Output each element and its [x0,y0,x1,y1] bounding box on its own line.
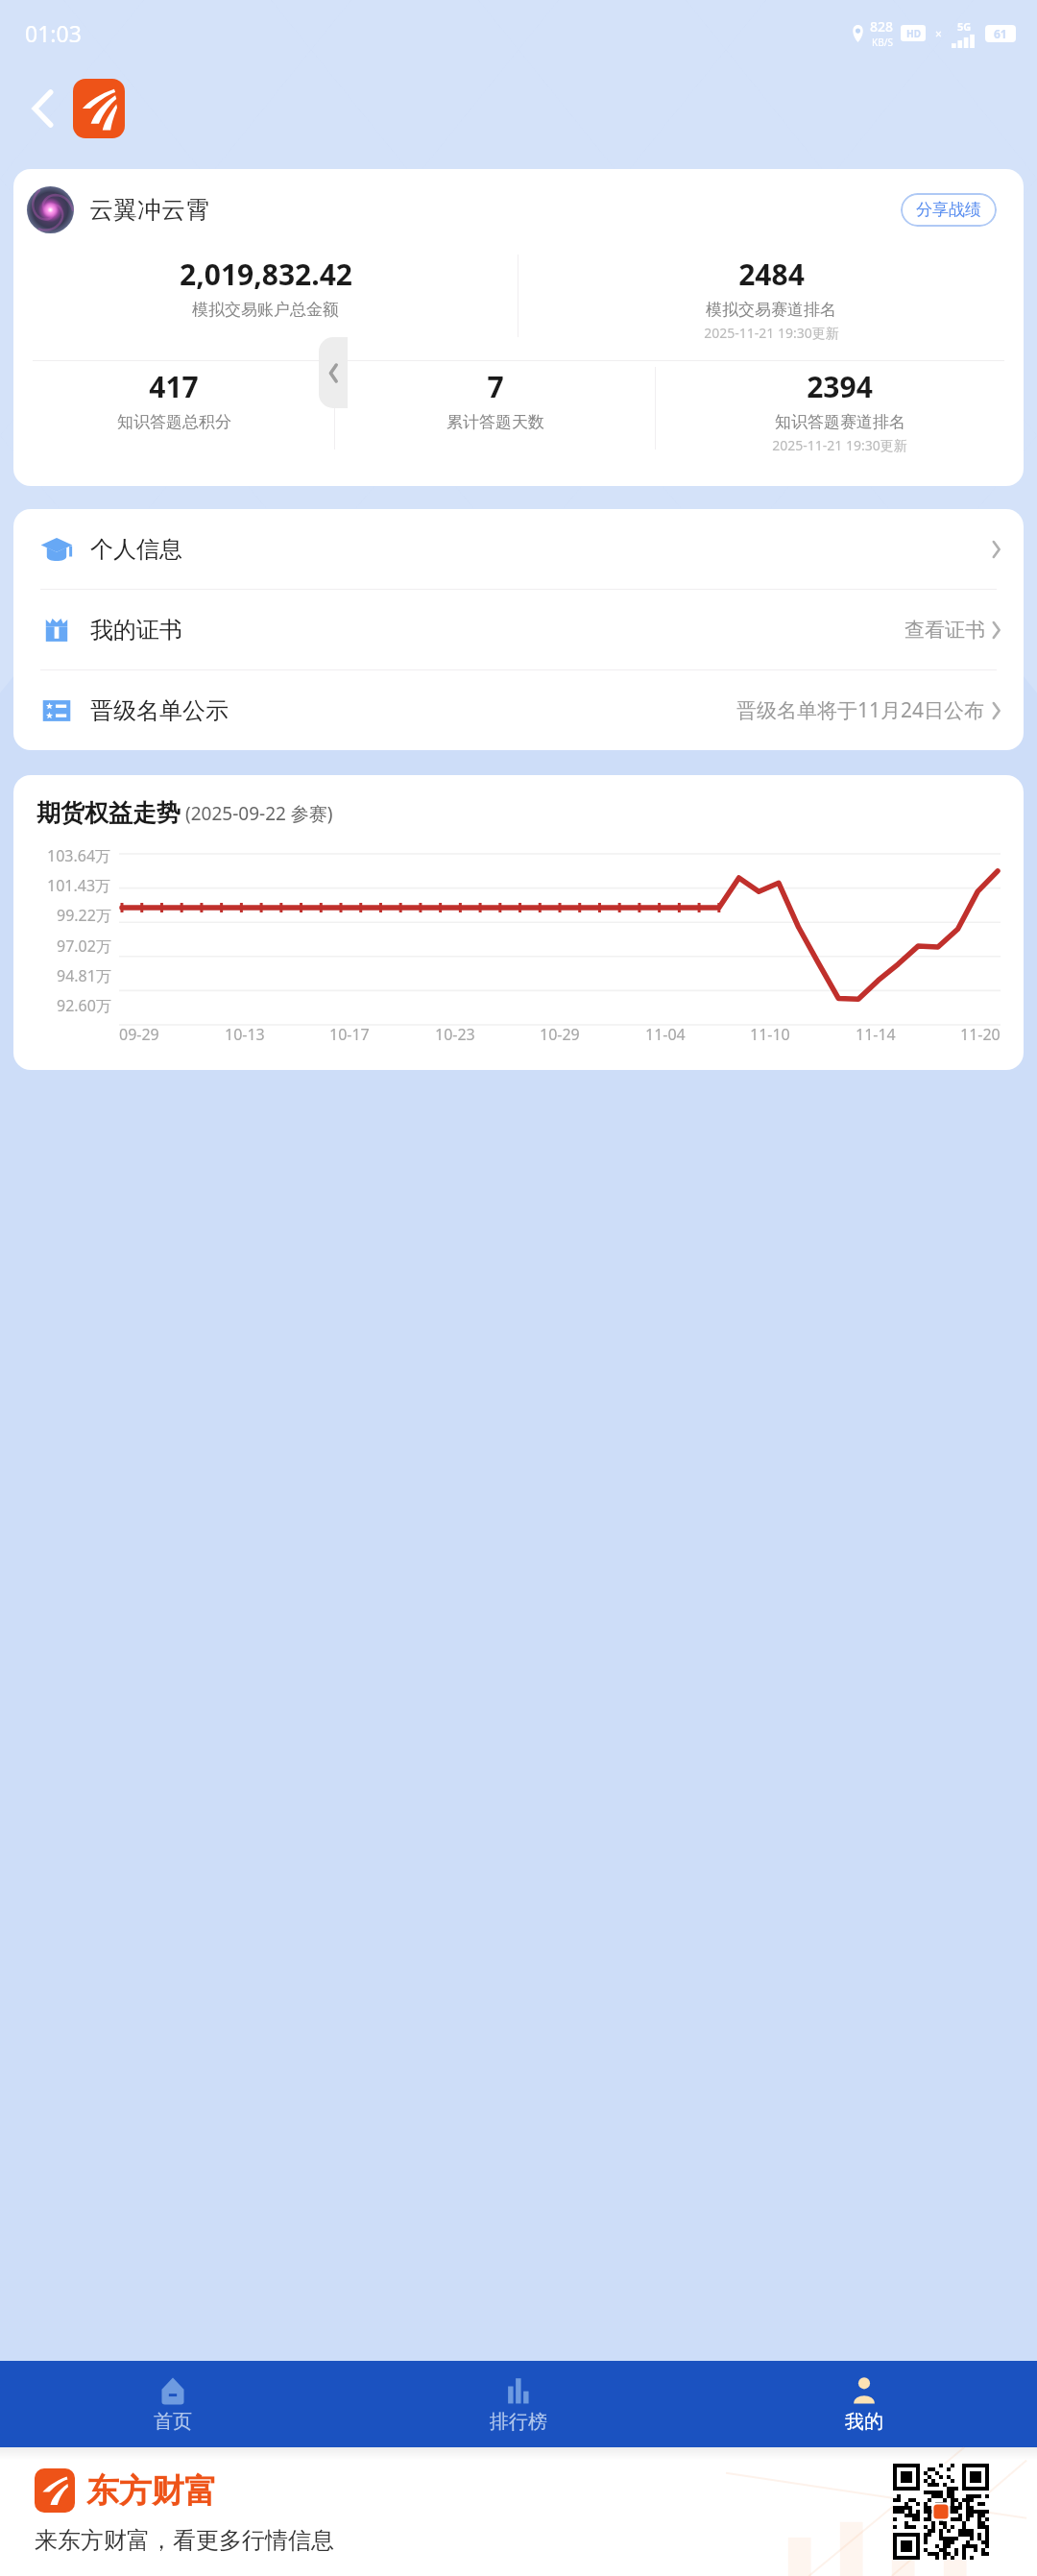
staticText: 828 [870,17,894,36]
staticText: 11-20 [960,1024,1001,1045]
staticText: 2394 [807,367,873,406]
staticText: 模拟交易账户总金额 [192,300,339,320]
staticText: 2,019,832.42 [180,255,352,294]
staticText: 11-14 [856,1024,896,1045]
staticText: 7 [487,367,504,406]
staticText: 知识答题总积分 [117,412,231,432]
staticText: 分享战绩 [916,200,981,220]
button[interactable]: 2484 [518,255,1024,342]
staticText: 排行榜 [490,2410,547,2434]
staticText: 晋级名单公示 [90,696,229,725]
staticText: 101.43万 [47,875,111,896]
staticText: 我的证书 [90,616,182,644]
staticText: 来东方财富，看更多行情信息 [35,2526,334,2555]
button[interactable]: 2394 [656,367,1024,454]
staticText: 10-23 [435,1024,475,1045]
button[interactable]: 晋级名单公示 [13,670,1024,750]
staticText: 2484 [738,255,805,294]
staticText: 期货权益走势 [36,798,181,828]
staticText: 累计答题天数 [446,412,544,432]
staticText: 01:03 [25,18,82,48]
button[interactable]: 首页 [0,2361,346,2447]
staticText: 东方财富 [86,2470,217,2512]
staticText: (2025-09-22 参赛) [185,801,333,826]
button[interactable]: App logo [73,79,125,138]
staticText: 云翼冲云霄 [89,195,209,225]
staticText: 94.81万 [57,965,111,986]
staticText: 2025-11-21 19:30更新 [772,436,907,454]
staticText: 92.60万 [57,995,111,1016]
staticText: 09-29 [119,1024,159,1045]
staticText: 10-29 [540,1024,580,1045]
staticText: 10-17 [329,1024,370,1045]
staticText: 417 [149,367,199,406]
button[interactable]: Back [17,83,69,134]
staticText: HD [906,27,921,40]
button[interactable]: 我的证书 [13,590,1024,669]
staticText: 个人信息 [90,535,182,564]
staticText: 首页 [154,2410,192,2434]
staticText: KB/S [872,36,893,49]
staticText: × [935,26,942,41]
staticText: 99.22万 [57,905,111,926]
staticText: 11-04 [645,1024,686,1045]
button[interactable]: 417 [13,367,334,432]
button[interactable]: 个人信息 [13,509,1024,589]
button[interactable]: 2,019,832.42 [13,255,518,320]
button[interactable]: 排行榜 [346,2361,691,2447]
staticText: 2025-11-21 19:30更新 [704,324,839,342]
staticText: 103.64万 [47,845,111,866]
staticText: 11-10 [750,1024,790,1045]
staticText: 我的 [845,2410,883,2434]
staticText: 知识答题赛道排名 [775,412,905,432]
button[interactable]: 7 [335,367,655,432]
staticText: 97.02万 [57,936,111,957]
staticText: 61 [994,26,1007,41]
staticText: 10-13 [225,1024,265,1045]
button[interactable]: 我的 [691,2361,1037,2447]
staticText: 5G [957,19,972,34]
staticText: 晋级名单将于11月24日公布 [736,696,985,724]
button[interactable]: 分享战绩 [901,193,997,227]
staticText: 模拟交易赛道排名 [706,300,836,320]
button[interactable]: Open drawer [319,337,348,408]
staticText: 查看证书 [904,618,985,643]
